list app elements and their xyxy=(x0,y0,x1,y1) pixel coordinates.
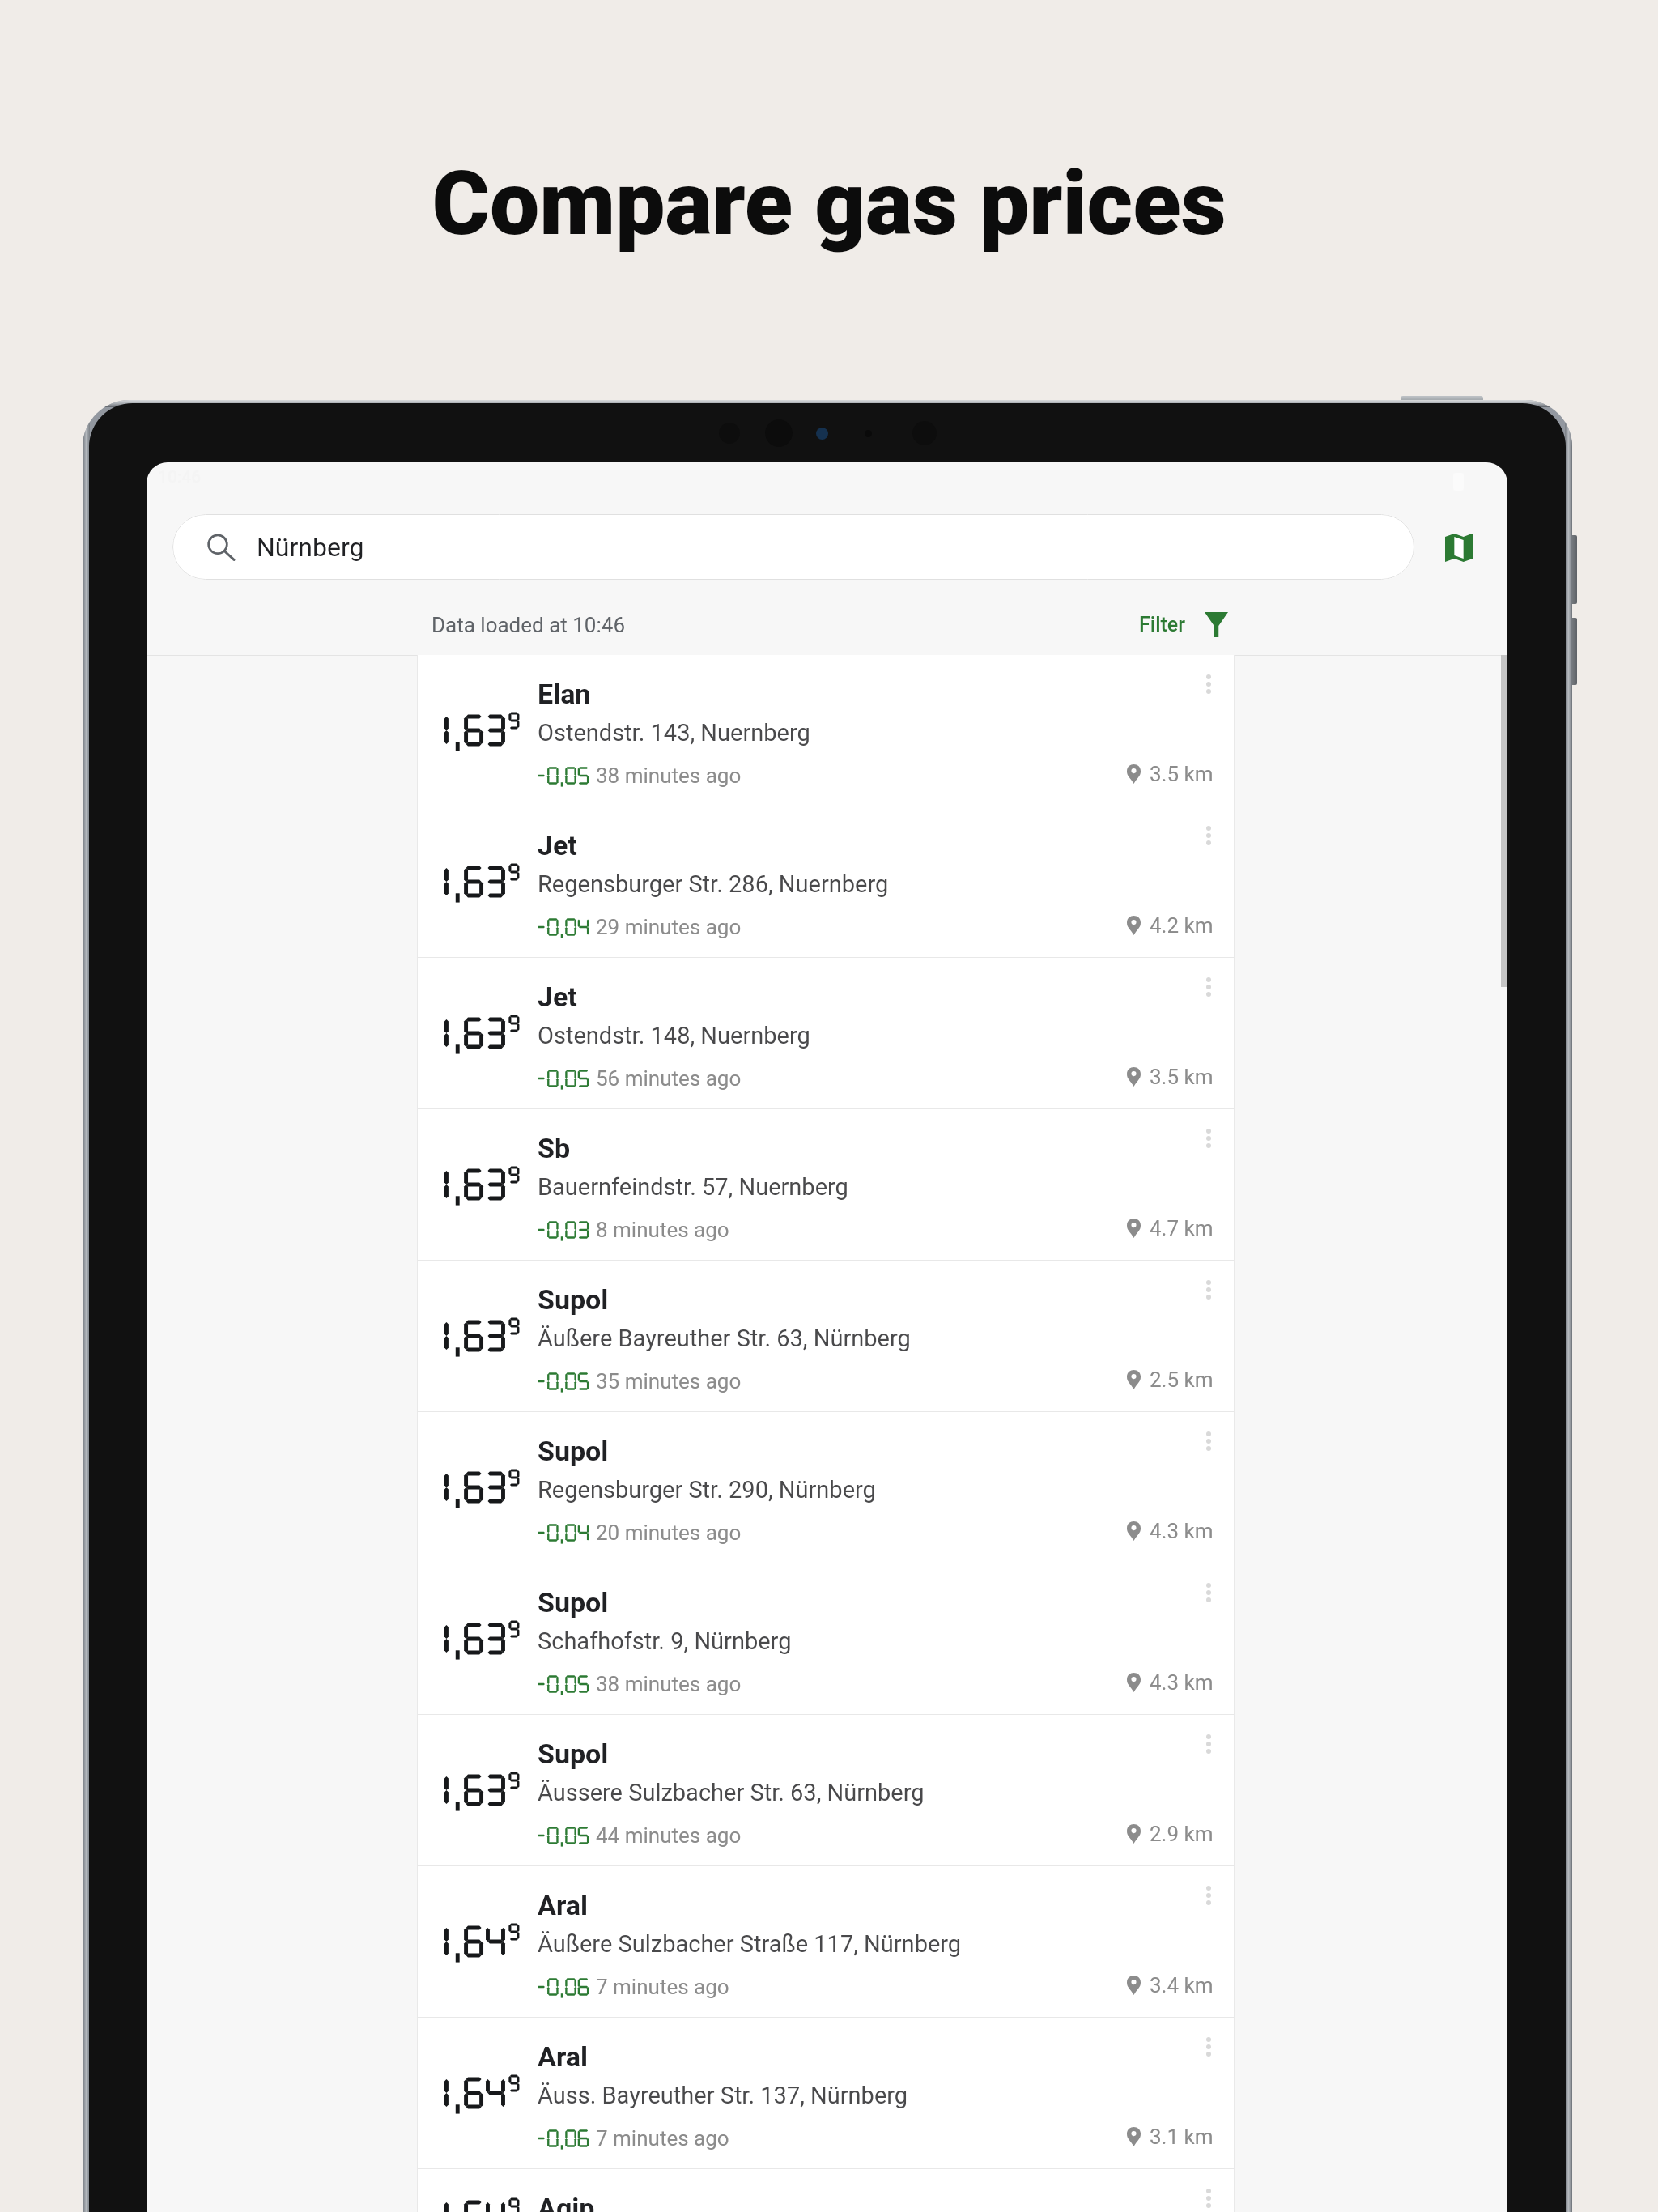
button[interactable]: Agip xyxy=(417,2169,1235,2212)
button[interactable]: Map xyxy=(1440,529,1477,566)
staticText: 35 minutes ago xyxy=(596,1369,742,1393)
button[interactable]: More options xyxy=(1189,1573,1228,1612)
staticText: 2.5 km xyxy=(1150,1368,1214,1392)
staticText: Filter xyxy=(1139,613,1186,636)
button[interactable]: More options xyxy=(1189,1876,1228,1915)
button[interactable]: Sb xyxy=(417,1109,1235,1260)
staticText: 2.9 km xyxy=(1150,1822,1214,1846)
staticText: 3.5 km xyxy=(1150,1065,1214,1089)
staticText: Ostendstr. 148, Nuernberg xyxy=(538,1022,810,1049)
staticText: 3.4 km xyxy=(1150,1973,1214,1997)
staticText: Jet xyxy=(538,829,577,861)
staticText: Elan xyxy=(538,678,591,710)
button[interactable]: Supol xyxy=(417,1563,1235,1714)
staticText: 56 minutes ago xyxy=(596,1066,742,1091)
staticText: 7 minutes ago xyxy=(596,2126,729,2150)
staticText: 3.1 km xyxy=(1150,2125,1214,2149)
staticText: Aral xyxy=(538,1889,589,1921)
staticText: Aral xyxy=(538,2040,589,2073)
button[interactable]: Jet xyxy=(417,806,1235,957)
staticText: 20 minutes ago xyxy=(596,1521,742,1545)
staticText: Compare gas prices xyxy=(0,152,1658,256)
staticText: Nürnberg xyxy=(257,532,364,563)
button[interactable]: More options xyxy=(1189,665,1228,704)
staticText: 38 minutes ago xyxy=(596,764,742,788)
staticText: Supol xyxy=(538,1435,609,1467)
staticText: Regensburger Str. 290, Nürnberg xyxy=(538,1476,876,1504)
button[interactable]: More options xyxy=(1189,1270,1228,1309)
button[interactable]: Filter xyxy=(1133,604,1235,645)
staticText: 3.5 km xyxy=(1150,762,1214,786)
staticText: Äussere Sulzbacher Str. 63, Nürnberg xyxy=(538,1779,925,1806)
staticText: Schafhofstr. 9, Nürnberg xyxy=(538,1627,792,1655)
staticText: Regensburger Str. 286, Nuernberg xyxy=(538,870,889,898)
button[interactable]: More options xyxy=(1189,968,1228,1006)
staticText: 4.7 km xyxy=(1150,1216,1214,1240)
staticText: Data loaded at 10:46 xyxy=(432,613,626,637)
staticText: Agip xyxy=(538,2192,595,2212)
staticText: 7 minutes ago xyxy=(596,1975,729,1999)
staticText: Supol xyxy=(538,1738,609,1770)
staticText: 38 minutes ago xyxy=(596,1672,742,1696)
button[interactable]: Elan xyxy=(417,655,1235,806)
staticText: 4.3 km xyxy=(1150,1519,1214,1543)
staticText: 29 minutes ago xyxy=(596,915,742,939)
staticText: Ostendstr. 143, Nuernberg xyxy=(538,719,810,747)
button[interactable]: More options xyxy=(1189,1725,1228,1763)
staticText: Supol xyxy=(538,1586,609,1619)
button[interactable]: Supol xyxy=(417,1715,1235,1865)
button[interactable]: More options xyxy=(1189,2179,1228,2212)
button[interactable]: More options xyxy=(1189,1119,1228,1158)
staticText: Äußere Bayreuther Str. 63, Nürnberg xyxy=(538,1325,911,1352)
button[interactable]: More options xyxy=(1189,816,1228,855)
staticText: 4.2 km xyxy=(1150,913,1214,938)
button[interactable]: Aral xyxy=(417,2018,1235,2168)
staticText: 4.3 km xyxy=(1150,1670,1214,1695)
button[interactable]: More options xyxy=(1189,1422,1228,1461)
staticText: Bauernfeindstr. 57, Nuernberg xyxy=(538,1173,848,1201)
button[interactable]: Supol xyxy=(417,1261,1235,1411)
staticText: Sb xyxy=(538,1132,571,1164)
button[interactable]: More options xyxy=(1189,2027,1228,2066)
staticText: Äuss. Bayreuther Str. 137, Nürnberg xyxy=(538,2082,908,2109)
staticText: Supol xyxy=(538,1283,609,1316)
staticText: 44 minutes ago xyxy=(596,1823,742,1848)
button[interactable]: Jet xyxy=(417,958,1235,1108)
staticText: Äußere Sulzbacher Straße 117, Nürnberg xyxy=(538,1930,962,1958)
button[interactable]: Supol xyxy=(417,1412,1235,1563)
staticText: Jet xyxy=(538,981,577,1013)
button[interactable]: Aral xyxy=(417,1866,1235,2017)
staticText: 8 minutes ago xyxy=(596,1218,729,1242)
button[interactable]: Nürnberg xyxy=(172,514,1414,580)
